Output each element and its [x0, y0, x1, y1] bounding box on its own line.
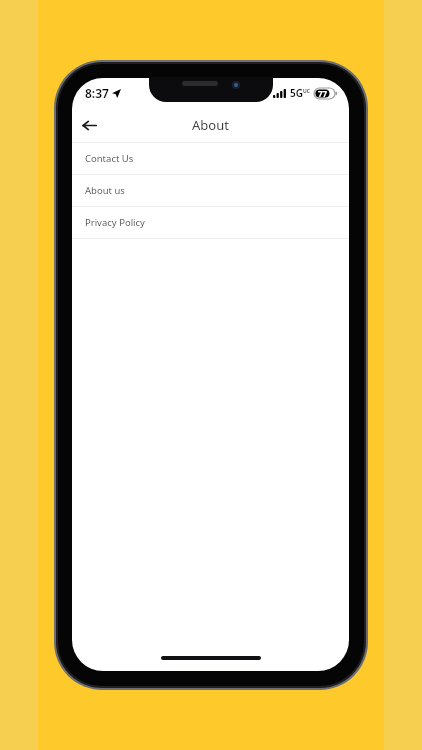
button[interactable]: Contact Us: [72, 143, 349, 174]
staticText: 8:37: [85, 85, 109, 101]
button[interactable]: Privacy Policy: [72, 207, 349, 238]
staticText: Contact Us: [85, 152, 134, 165]
staticText: 5G: [290, 86, 303, 100]
staticText: 77: [318, 88, 328, 99]
button[interactable]: About us: [72, 175, 349, 206]
staticText: Privacy Policy: [85, 216, 145, 229]
staticText: About: [192, 116, 229, 134]
button[interactable]: Back: [72, 108, 106, 142]
staticText: About us: [85, 184, 125, 197]
staticText: UC: [303, 88, 310, 95]
